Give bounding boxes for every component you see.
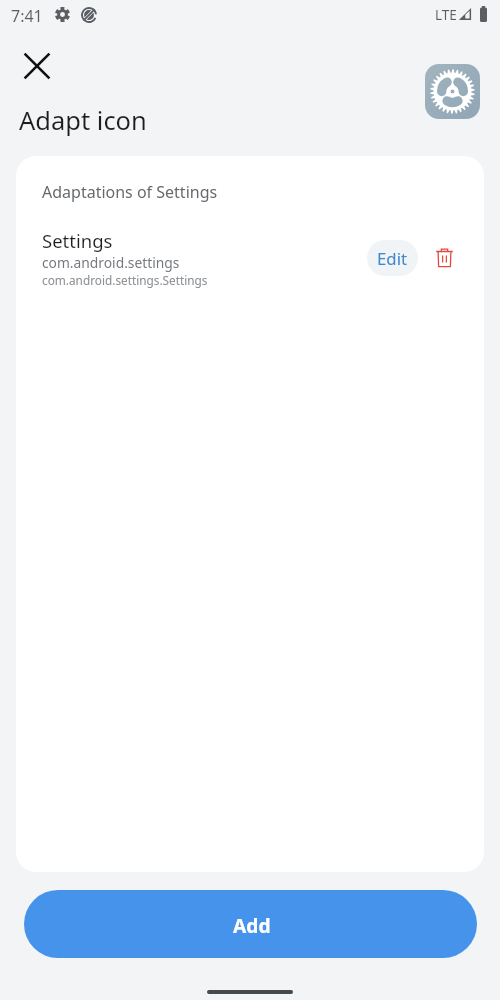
staticText: com.android.settings xyxy=(42,253,180,272)
button[interactable]: Close xyxy=(13,42,61,90)
staticText: Adapt icon xyxy=(19,103,147,138)
staticText: com.android.settings.Settings xyxy=(42,272,208,288)
button[interactable]: Settings app icon xyxy=(425,64,480,119)
button[interactable]: Edit xyxy=(367,240,418,276)
button[interactable]: Delete xyxy=(426,239,463,276)
staticText: Add xyxy=(233,912,271,938)
staticText: Settings xyxy=(42,228,113,253)
staticText: Edit xyxy=(377,247,408,270)
staticText: LTE xyxy=(435,6,457,24)
button[interactable]: Add xyxy=(24,890,477,958)
staticText: Adaptations of Settings xyxy=(42,181,218,203)
staticText: 7:41 xyxy=(11,5,43,27)
